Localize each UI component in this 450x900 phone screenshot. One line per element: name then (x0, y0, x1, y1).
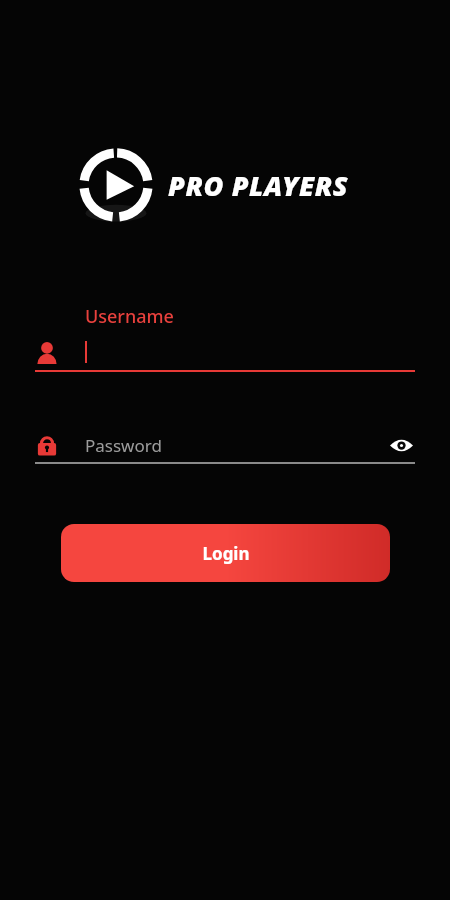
staticText: PRO PLAYERS (168, 167, 349, 204)
button[interactable]: Username (35, 304, 415, 372)
button[interactable]: Login (61, 524, 390, 582)
staticText: Login (202, 542, 250, 565)
staticText: Username (85, 304, 174, 329)
button[interactable]: Show password (387, 431, 415, 459)
staticText: Password (85, 434, 162, 457)
button[interactable]: Password (35, 430, 415, 464)
